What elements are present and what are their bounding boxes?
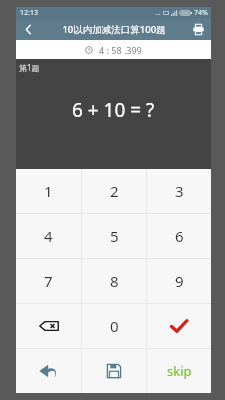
button[interactable]: 0	[82, 304, 146, 348]
staticText: 2	[110, 181, 119, 201]
button[interactable]: Backspace	[16, 304, 81, 348]
button[interactable]: 9	[147, 259, 211, 303]
button[interactable]: Confirm	[147, 304, 211, 348]
staticText: 0	[110, 316, 119, 336]
staticText: 12:13	[20, 8, 38, 18]
staticText: ...	[155, 8, 161, 18]
button[interactable]: 2	[82, 169, 146, 213]
button[interactable]: Back	[16, 19, 40, 40]
staticText: 5	[110, 226, 119, 246]
button[interactable]: 4	[16, 214, 81, 258]
button[interactable]: skip	[147, 349, 211, 393]
staticText: 3	[175, 181, 184, 201]
staticText: 第1题	[19, 62, 40, 73]
button[interactable]: 6	[147, 214, 211, 258]
staticText: 9	[175, 271, 184, 291]
staticText: 8	[110, 271, 119, 291]
button[interactable]: Undo	[16, 349, 81, 393]
button[interactable]: 3	[147, 169, 211, 213]
button[interactable]: 1	[16, 169, 81, 213]
staticText: 4 : 58 .399	[99, 44, 142, 56]
button[interactable]: 8	[82, 259, 146, 303]
staticText: 4	[44, 226, 53, 246]
button[interactable]: 5	[82, 214, 146, 258]
staticText: skip	[167, 362, 192, 380]
staticText: 10以内加减法口算100题	[62, 23, 166, 36]
staticText: 1	[44, 181, 53, 201]
staticText: 74%	[194, 8, 208, 18]
staticText: 7	[44, 271, 53, 291]
staticText: 6 + 10 = ?	[72, 97, 155, 123]
button[interactable]: Print	[185, 19, 211, 40]
button[interactable]: Save	[82, 349, 146, 393]
staticText: 6	[175, 226, 184, 246]
button[interactable]: 7	[16, 259, 81, 303]
